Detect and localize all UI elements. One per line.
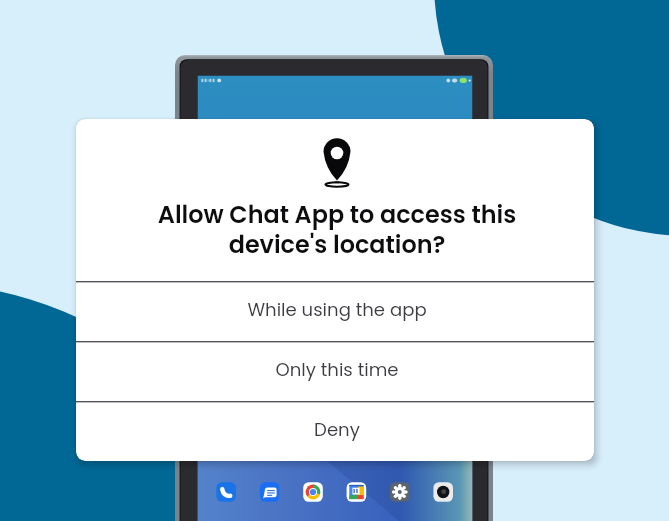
button[interactable]: Only this time [76,341,594,401]
staticText: While using the app [247,297,427,322]
staticText: Only this time [275,357,399,382]
staticText: Allow Chat App to access this device's l… [78,198,594,262]
button[interactable]: Deny [76,401,594,461]
staticText: Deny [314,417,360,442]
button[interactable]: While using the app [76,281,594,341]
